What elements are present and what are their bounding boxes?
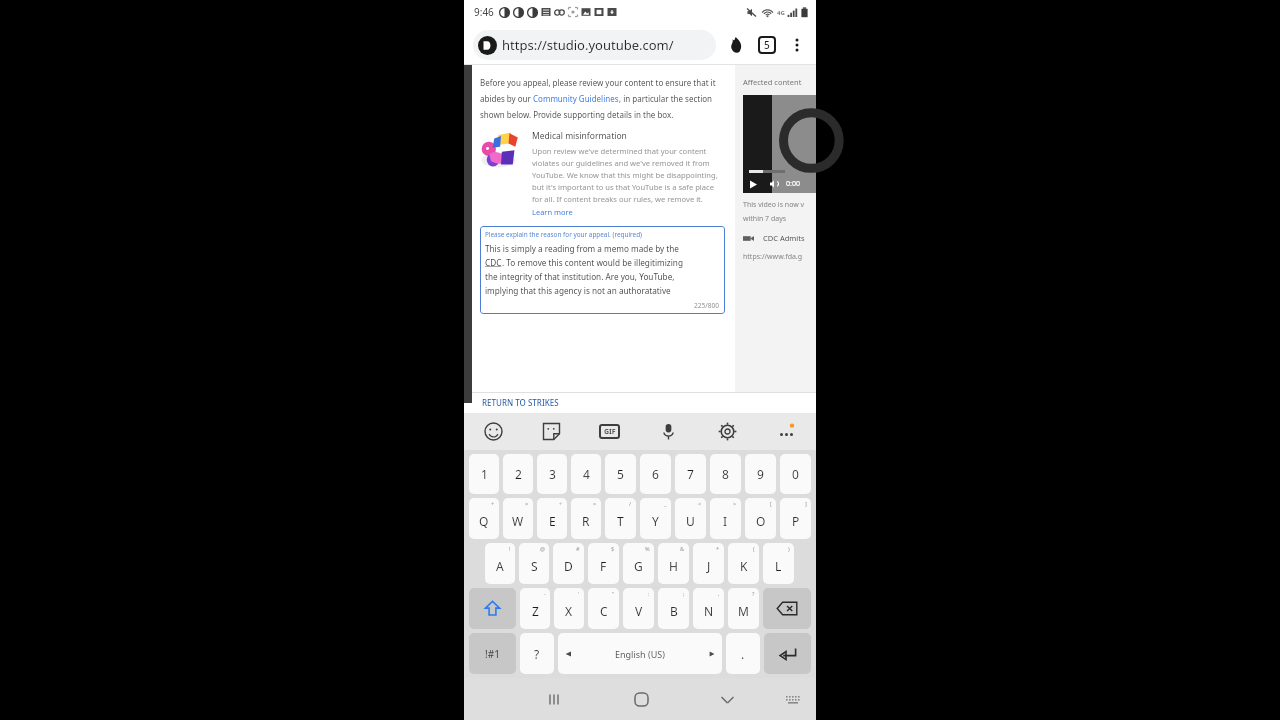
staticText: G [634, 558, 643, 574]
button[interactable]: 8 [710, 454, 741, 494]
button[interactable]: GIF [580, 413, 639, 450]
button[interactable]: Community Guidelines [533, 93, 619, 104]
staticText: Q [479, 513, 489, 529]
button[interactable]: Shift [469, 588, 516, 629]
staticText: [ [770, 500, 772, 507]
staticText: M [738, 603, 749, 619]
button[interactable]: ! [485, 543, 515, 584]
button[interactable]: English (US) [558, 633, 722, 674]
button[interactable]: 2 [503, 454, 533, 494]
staticText: F [600, 558, 607, 574]
button[interactable]: 4 [571, 454, 601, 494]
staticText: & [680, 545, 685, 552]
button[interactable]: < [675, 498, 706, 539]
staticText: " [612, 590, 615, 597]
button[interactable]: $ [588, 543, 619, 584]
button[interactable]: ' [554, 588, 584, 629]
button[interactable]: ] [780, 498, 811, 539]
staticText: ÷ [559, 500, 563, 507]
button[interactable]: Recents [512, 678, 598, 720]
button[interactable]: 9 [745, 454, 776, 494]
button[interactable]: Emoji [464, 413, 522, 450]
staticText: / [629, 500, 632, 507]
button[interactable]: : [623, 588, 654, 629]
button[interactable]: 6 [640, 454, 671, 494]
button[interactable]: Hide keyboard [684, 678, 770, 720]
staticText: ; [683, 590, 685, 597]
button[interactable]: " [588, 588, 619, 629]
staticText: > [733, 500, 737, 507]
button[interactable]: @ [519, 543, 549, 584]
button[interactable]: Trending [725, 34, 747, 56]
staticText: 0:00 [786, 179, 800, 189]
staticText: T [617, 513, 624, 529]
button[interactable]: 5 [605, 454, 636, 494]
button[interactable]: Backspace [763, 588, 811, 629]
staticText: $ [611, 545, 615, 552]
button[interactable]: ? [728, 588, 759, 629]
button[interactable]: * [693, 543, 724, 584]
button[interactable]: = [571, 498, 601, 539]
staticText: . To remove this content would be illegi… [502, 257, 683, 268]
button[interactable]: More [757, 413, 816, 450]
staticText: < [698, 500, 702, 507]
button[interactable]: Learn more [532, 207, 573, 217]
staticText: ! [509, 545, 511, 552]
button[interactable]: , [693, 588, 724, 629]
staticText: _ [664, 500, 667, 507]
staticText: Learn more [532, 207, 573, 217]
button[interactable]: _ [640, 498, 671, 539]
button[interactable]: Home [598, 678, 684, 720]
staticText: , [718, 590, 720, 597]
button[interactable]: Symbols [469, 633, 516, 674]
button[interactable]: https://studio.youtube.com/ [473, 30, 716, 60]
staticText: 6 [652, 466, 659, 482]
button[interactable]: / [605, 498, 636, 539]
button[interactable]: . [726, 633, 760, 674]
staticText: P [792, 513, 800, 529]
staticText: implying that this agency is not an auth… [485, 285, 671, 296]
staticText: - [544, 590, 546, 597]
button[interactable]: Voice input [639, 413, 698, 450]
button[interactable]: More options [787, 35, 807, 55]
button[interactable]: 1 [469, 454, 499, 494]
staticText: % [645, 545, 650, 552]
staticText: Before you appeal, please review your co… [480, 77, 716, 88]
button[interactable]: Video preview [743, 95, 816, 193]
staticText: 5 [617, 466, 624, 482]
button[interactable]: Please explain the reason for your appea… [480, 226, 725, 314]
staticText: ' [578, 590, 580, 597]
button[interactable]: Settings [698, 413, 757, 450]
button[interactable]: - [520, 588, 550, 629]
button[interactable]: ; [658, 588, 689, 629]
staticText: 4G [777, 9, 785, 17]
button[interactable]: # [553, 543, 584, 584]
button[interactable]: % [623, 543, 654, 584]
staticText: . [741, 646, 745, 662]
staticText: 9 [757, 466, 764, 482]
staticText: This is simply a reading from a memo mad… [485, 243, 679, 254]
button[interactable]: 3 [537, 454, 567, 494]
button[interactable]: 7 [675, 454, 706, 494]
staticText: 3 [549, 466, 556, 482]
button[interactable]: × [503, 498, 533, 539]
button[interactable]: Tabs [758, 36, 776, 54]
staticText: @ [540, 545, 545, 552]
button[interactable]: ? [520, 633, 554, 674]
button[interactable]: ( [728, 543, 759, 584]
button[interactable]: & [658, 543, 689, 584]
button[interactable]: + [469, 498, 499, 539]
button[interactable]: Keyboard layout [770, 678, 816, 720]
button[interactable]: 0 [780, 454, 811, 494]
staticText: https://studio.youtube.com/ [502, 36, 674, 54]
staticText: English (US) [615, 648, 665, 660]
button[interactable]: ) [763, 543, 794, 584]
staticText: × [525, 500, 529, 507]
button[interactable]: [ [745, 498, 776, 539]
button[interactable]: ÷ [537, 498, 567, 539]
button[interactable]: > [710, 498, 741, 539]
button[interactable]: Enter [764, 633, 811, 674]
button[interactable]: RETURN TO STRIKES [464, 392, 569, 413]
button[interactable]: Stickers [522, 413, 580, 450]
staticText: E [549, 513, 556, 529]
